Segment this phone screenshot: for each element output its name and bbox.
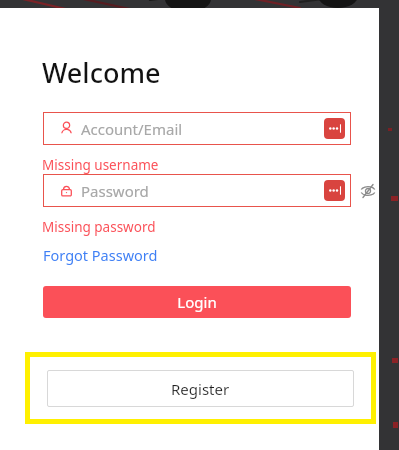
staticText: Missing username xyxy=(42,156,159,174)
staticText: Welcome xyxy=(42,54,161,91)
button[interactable]: Password xyxy=(43,174,351,207)
staticText: Password xyxy=(81,181,149,201)
button[interactable]: Show password xyxy=(356,179,379,202)
button[interactable]: Autofill xyxy=(324,180,345,201)
staticText: Register xyxy=(171,379,230,399)
button[interactable]: Forgot Password xyxy=(42,243,159,267)
staticText: Missing password xyxy=(42,218,156,236)
button[interactable]: Autofill xyxy=(324,118,345,139)
button[interactable]: Login xyxy=(43,286,351,318)
button[interactable]: Register xyxy=(47,370,354,407)
staticText: Forgot Password xyxy=(43,245,158,265)
staticText: Account/Email xyxy=(81,119,183,139)
button[interactable]: Account/Email xyxy=(43,112,351,145)
staticText: Login xyxy=(177,292,217,312)
